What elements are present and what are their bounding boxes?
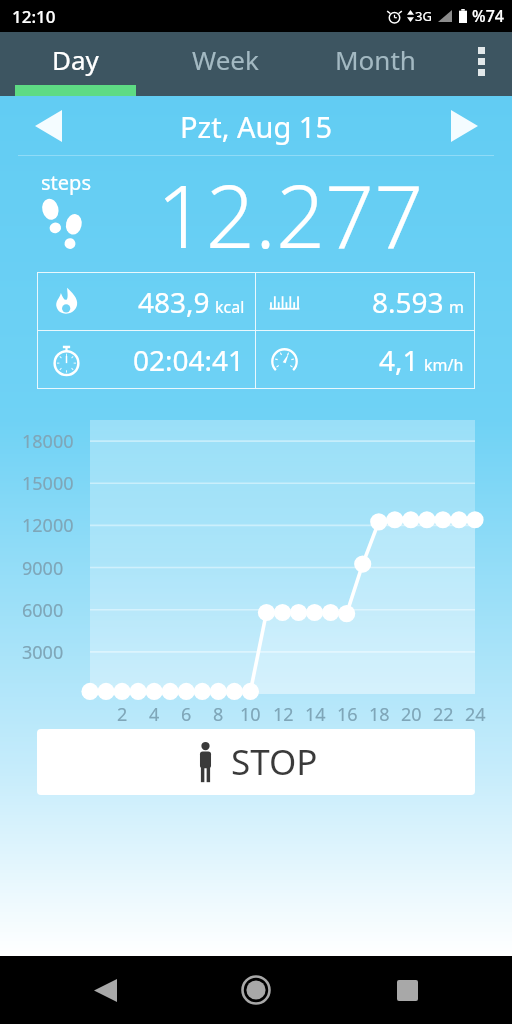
staticText: 3G xyxy=(415,7,432,25)
button[interactable]: Day xyxy=(0,32,150,96)
button[interactable]: Back xyxy=(79,964,131,1016)
button[interactable]: 02:04:41 xyxy=(38,331,255,388)
staticText: 10 xyxy=(240,702,261,727)
staticText: m xyxy=(449,296,464,318)
button[interactable]: Week xyxy=(150,32,300,96)
staticText: Month xyxy=(335,42,416,77)
staticText: 18 xyxy=(369,702,390,727)
staticText: Week xyxy=(192,42,259,77)
button[interactable]: Recent apps xyxy=(381,964,433,1016)
staticText: 2 xyxy=(117,702,128,727)
staticText: 6000 xyxy=(22,598,64,623)
staticText: 20 xyxy=(401,702,422,727)
staticText: 24 xyxy=(465,702,486,727)
staticText: 6 xyxy=(181,702,192,727)
staticText: 483,9 xyxy=(138,283,210,321)
button[interactable]: STOP xyxy=(37,729,475,795)
staticText: 15000 xyxy=(22,471,74,496)
staticText: 18000 xyxy=(22,429,74,454)
staticText: kcal xyxy=(215,296,245,318)
button[interactable]: 483,9 xyxy=(38,273,255,330)
button[interactable]: 4,1 xyxy=(256,331,474,388)
staticText: 12000 xyxy=(22,513,74,538)
button[interactable]: Previous day xyxy=(24,102,72,150)
staticText: 14 xyxy=(305,702,326,727)
staticText: Day xyxy=(52,42,99,77)
button[interactable]: Month xyxy=(300,32,450,96)
button[interactable]: More options xyxy=(450,32,512,96)
staticText: Pzt, Aug 15 xyxy=(72,107,440,146)
staticText: 22 xyxy=(433,702,454,727)
staticText: 3000 xyxy=(22,640,64,665)
staticText: km/h xyxy=(424,354,464,376)
staticText: 12 xyxy=(273,702,294,727)
staticText: 02:04:41 xyxy=(133,341,245,379)
staticText: STOP xyxy=(231,738,318,786)
button[interactable]: Next day xyxy=(440,102,488,150)
staticText: 12.277 xyxy=(96,156,484,264)
button[interactable]: Home xyxy=(230,964,282,1016)
staticText: 4 xyxy=(149,702,160,727)
button[interactable]: 8.593 xyxy=(256,273,474,330)
staticText: 9000 xyxy=(22,556,64,581)
staticText: 12:10 xyxy=(12,5,56,28)
staticText: 4,1 xyxy=(379,341,419,379)
staticText: %74 xyxy=(472,5,504,27)
staticText: 8 xyxy=(213,702,224,727)
staticText: 16 xyxy=(337,702,358,727)
staticText: 8.593 xyxy=(372,283,444,321)
staticText: steps xyxy=(41,169,91,196)
